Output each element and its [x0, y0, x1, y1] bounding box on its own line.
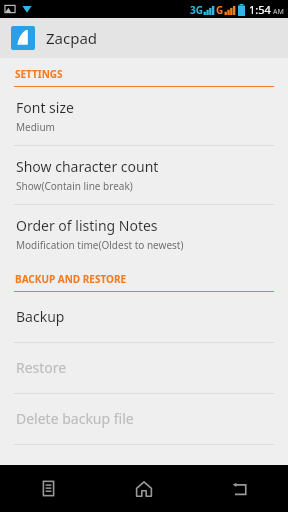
button[interactable]: Recent apps — [0, 465, 96, 512]
staticText: Zacpad — [46, 28, 98, 48]
staticText: AM — [273, 7, 284, 17]
button[interactable]: Order of listing Notes — [0, 205, 288, 263]
staticText: G — [216, 3, 224, 17]
staticText: 3G — [190, 3, 203, 17]
button[interactable]: Backup — [0, 292, 288, 342]
staticText: Restore — [16, 358, 67, 377]
staticText: Show(Contain line break) — [16, 179, 133, 193]
staticText: BACKUP AND RESTORE — [15, 272, 127, 286]
button[interactable]: Show character count — [0, 146, 288, 204]
staticText: Backup — [16, 307, 65, 326]
staticText: Modification time(Oldest to newest) — [16, 238, 184, 252]
staticText: Medium — [16, 120, 55, 134]
button[interactable]: Back — [192, 465, 288, 512]
staticText: SETTINGS — [15, 67, 63, 81]
staticText: Show character count — [16, 157, 159, 176]
staticText: Delete backup file — [16, 409, 134, 428]
button: Delete backup file — [0, 394, 288, 444]
button[interactable]: Home — [96, 465, 192, 512]
button[interactable]: Font size — [0, 87, 288, 145]
staticText: 1:54 — [249, 2, 271, 17]
staticText: Order of listing Notes — [16, 216, 158, 235]
staticText: Font size — [16, 98, 74, 117]
button: Restore — [0, 343, 288, 393]
